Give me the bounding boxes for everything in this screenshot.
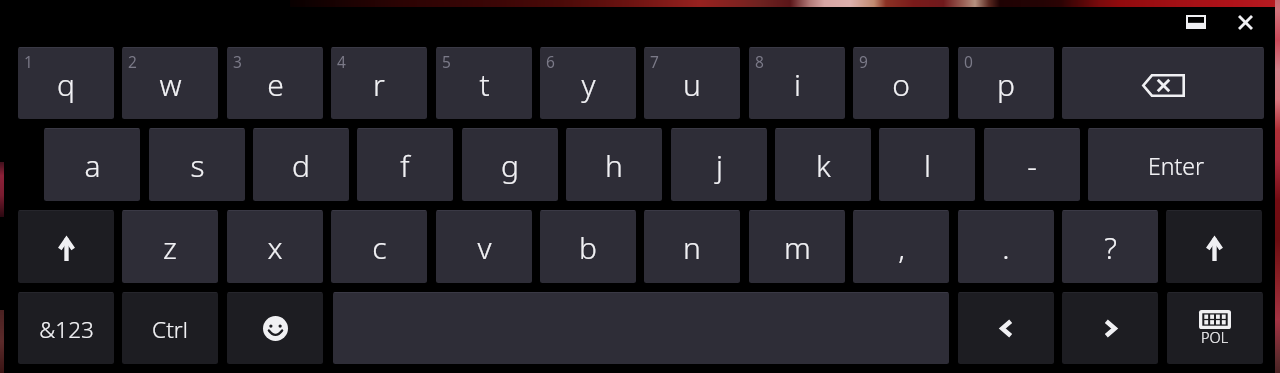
button[interactable]: Move cursor left [958, 292, 1054, 364]
staticText: y [581, 64, 596, 105]
button[interactable]: f [357, 128, 453, 201]
button[interactable]: 7 [644, 47, 740, 119]
button[interactable]: 1 [18, 47, 114, 119]
staticText: j [716, 145, 723, 186]
staticText: s [190, 145, 205, 186]
staticText: h [605, 145, 623, 186]
button[interactable]: Shift [1166, 210, 1262, 283]
staticText: a [84, 145, 101, 186]
button[interactable]: v [436, 210, 532, 283]
staticText: 9 [859, 51, 868, 72]
button[interactable]: 2 [122, 47, 218, 119]
staticText: 5 [442, 51, 451, 72]
staticText: Ctrl [152, 314, 188, 345]
button[interactable]: Move cursor right [1062, 292, 1158, 364]
staticText: - [1027, 145, 1037, 186]
button[interactable]: 4 [331, 47, 427, 119]
staticText: 2 [128, 51, 137, 72]
staticText: f [400, 145, 410, 186]
staticText: p [997, 64, 1015, 105]
staticText: u [683, 64, 701, 105]
staticText: 7 [650, 51, 659, 72]
staticText: q [57, 64, 75, 105]
button[interactable]: Hide keyboard [1176, 8, 1216, 36]
staticText: c [372, 227, 387, 268]
button[interactable]: 0 [958, 47, 1054, 119]
staticText: v [477, 227, 492, 268]
button[interactable]: 8 [749, 47, 845, 119]
button[interactable]: 3 [227, 47, 323, 119]
staticText: , [898, 227, 905, 268]
button[interactable]: 9 [853, 47, 949, 119]
button[interactable]: Close keyboard [1231, 8, 1259, 36]
button[interactable]: Emoji [227, 292, 323, 364]
button[interactable]: 6 [540, 47, 636, 119]
staticText: POL [1201, 327, 1229, 347]
staticText: x [267, 227, 283, 268]
staticText: m [784, 227, 811, 268]
button[interactable]: &123 [18, 292, 114, 364]
button[interactable]: - [984, 128, 1080, 201]
staticText: d [292, 145, 310, 186]
staticText: l [924, 145, 931, 186]
button[interactable]: m [749, 210, 845, 283]
button[interactable]: ? [1062, 210, 1158, 283]
button[interactable]: z [122, 210, 218, 283]
button[interactable]: 5 [436, 47, 532, 119]
button[interactable]: h [566, 128, 662, 201]
staticText: &123 [39, 314, 94, 345]
button[interactable]: d [253, 128, 349, 201]
button[interactable]: s [149, 128, 245, 201]
staticText: b [579, 227, 597, 268]
staticText: 3 [233, 51, 242, 72]
staticText: w [159, 64, 182, 105]
button[interactable]: l [879, 128, 975, 201]
button[interactable]: c [331, 210, 427, 283]
button[interactable]: b [540, 210, 636, 283]
staticText: 8 [755, 51, 764, 72]
button[interactable]: Backspace [1062, 47, 1264, 119]
staticText: n [683, 227, 701, 268]
button[interactable]: x [227, 210, 323, 283]
staticText: g [501, 145, 519, 186]
button[interactable]: Enter [1088, 128, 1263, 201]
staticText: . [1002, 227, 1010, 268]
staticText: z [163, 227, 177, 268]
button[interactable]: Shift [18, 210, 114, 283]
button[interactable]: k [775, 128, 871, 201]
staticText: 4 [337, 51, 346, 72]
staticText: ? [1104, 227, 1117, 268]
staticText: i [794, 64, 801, 105]
staticText: 6 [546, 51, 555, 72]
button[interactable]: , [853, 210, 949, 283]
button[interactable]: Ctrl [122, 292, 218, 364]
staticText: o [892, 64, 910, 105]
staticText: k [816, 145, 831, 186]
button[interactable]: . [958, 210, 1054, 283]
button[interactable]: j [671, 128, 767, 201]
staticText: e [267, 64, 284, 105]
button[interactable]: g [462, 128, 558, 201]
button[interactable]: Switch keyboard language [1167, 292, 1263, 364]
staticText: 1 [24, 51, 33, 72]
staticText: t [479, 64, 490, 105]
staticText: r [373, 64, 385, 105]
staticText: 0 [964, 51, 973, 72]
staticText: Enter [1148, 150, 1204, 181]
button[interactable]: a [44, 128, 140, 201]
button[interactable]: n [644, 210, 740, 283]
